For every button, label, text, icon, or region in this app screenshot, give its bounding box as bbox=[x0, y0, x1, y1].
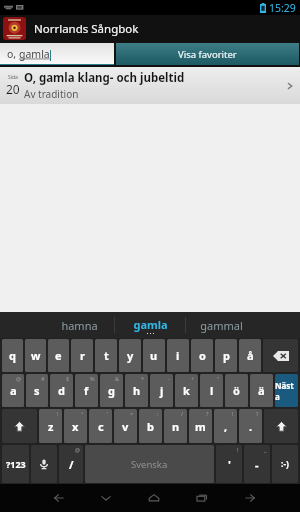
button[interactable]: Norrlands Sångbok bbox=[0, 15, 300, 42]
staticText: o bbox=[199, 348, 206, 363]
button[interactable]: Back bbox=[35, 484, 82, 512]
staticText: Norrlands Sångbok bbox=[34, 21, 139, 37]
button[interactable]: Shift bbox=[264, 409, 298, 443]
button[interactable]: q bbox=[2, 339, 23, 372]
button[interactable]: % bbox=[75, 374, 98, 407]
staticText: u bbox=[150, 348, 158, 363]
button[interactable]: Voice input bbox=[31, 445, 57, 483]
staticText: . bbox=[249, 419, 253, 434]
button[interactable]: " bbox=[200, 374, 223, 407]
staticText: d bbox=[58, 383, 65, 398]
staticText: e bbox=[55, 348, 62, 363]
staticText: Svenska bbox=[131, 458, 168, 471]
staticText: q bbox=[9, 348, 16, 363]
button[interactable]: # bbox=[26, 374, 48, 407]
button[interactable]: Home bbox=[130, 484, 178, 512]
button[interactable]: - bbox=[150, 374, 173, 407]
staticText: / bbox=[181, 410, 184, 417]
button[interactable]: @ bbox=[2, 374, 24, 407]
staticText: gamla bbox=[133, 317, 168, 332]
staticText: ?123 bbox=[6, 458, 26, 470]
button[interactable]: ? bbox=[189, 409, 212, 443]
staticText: ° bbox=[81, 410, 84, 417]
staticText: Nästa bbox=[275, 380, 298, 402]
staticText: _ bbox=[264, 446, 267, 453]
button[interactable]: y bbox=[119, 339, 141, 372]
button[interactable]: Backspace bbox=[263, 339, 298, 372]
button[interactable]: Visa favoriter bbox=[116, 43, 299, 65]
button[interactable]: Forward bbox=[226, 484, 274, 512]
staticText: gammal bbox=[200, 318, 243, 333]
button[interactable]: $ bbox=[50, 374, 73, 407]
button[interactable]: e bbox=[48, 339, 69, 372]
button[interactable]: ? bbox=[239, 409, 262, 443]
staticText: h bbox=[133, 383, 141, 398]
button[interactable]: @ bbox=[59, 445, 83, 483]
button[interactable]: Recent apps bbox=[178, 484, 226, 512]
button[interactable]: Shift bbox=[2, 409, 37, 443]
button[interactable]: = bbox=[114, 409, 137, 443]
button[interactable]: ! bbox=[214, 409, 237, 443]
button[interactable]: p bbox=[215, 339, 237, 372]
button[interactable]: u bbox=[143, 339, 165, 372]
button[interactable]: Svenska bbox=[85, 445, 214, 483]
button[interactable]: Sida bbox=[0, 67, 300, 104]
staticText: " bbox=[217, 375, 220, 382]
staticText: & bbox=[115, 375, 120, 382]
button[interactable]: + bbox=[175, 374, 198, 407]
button[interactable]: ?123 bbox=[2, 445, 29, 483]
button[interactable]: gamla bbox=[115, 312, 185, 338]
staticText: c bbox=[98, 419, 104, 434]
button[interactable]: r bbox=[71, 339, 93, 372]
staticText: n bbox=[172, 419, 180, 434]
staticText: % bbox=[90, 375, 95, 382]
staticText: Visa favoriter bbox=[178, 48, 237, 61]
staticText: ! bbox=[232, 410, 234, 417]
button[interactable]: ' bbox=[89, 409, 112, 443]
button[interactable]: Hide keyboard bbox=[82, 484, 130, 512]
staticText: l bbox=[210, 383, 214, 398]
staticText: ' bbox=[107, 410, 109, 417]
button[interactable]: Nästa bbox=[275, 374, 298, 407]
button[interactable]: o bbox=[191, 339, 213, 372]
button[interactable]: ! bbox=[39, 409, 62, 443]
button[interactable]: hamna bbox=[44, 312, 114, 338]
staticText: j bbox=[160, 383, 164, 398]
button[interactable]: * bbox=[125, 374, 148, 407]
button[interactable]: t bbox=[95, 339, 117, 372]
staticText: 15:29 bbox=[269, 1, 296, 15]
staticText: = bbox=[130, 410, 134, 417]
button[interactable]: ö bbox=[225, 374, 248, 407]
button[interactable]: w bbox=[25, 339, 46, 372]
button[interactable]: & bbox=[100, 374, 123, 407]
staticText: x bbox=[72, 419, 79, 434]
button[interactable]: / bbox=[164, 409, 187, 443]
staticText: a bbox=[10, 383, 17, 398]
staticText: ä bbox=[258, 383, 265, 398]
staticText: m bbox=[195, 419, 206, 434]
staticText: g bbox=[108, 383, 115, 398]
button[interactable]: ! bbox=[216, 445, 242, 483]
staticText: O, gamla klang- och jubeltid bbox=[24, 70, 185, 86]
staticText: k bbox=[183, 383, 190, 398]
staticText: :-) bbox=[281, 458, 289, 470]
staticText: o, bbox=[7, 47, 19, 61]
button[interactable]: ° bbox=[64, 409, 87, 443]
button[interactable]: ä bbox=[250, 374, 273, 407]
staticText: - bbox=[168, 375, 170, 382]
staticText: ? bbox=[206, 410, 209, 417]
button[interactable]: å bbox=[239, 339, 261, 372]
button[interactable]: o, bbox=[0, 43, 114, 65]
staticText: v bbox=[122, 419, 129, 434]
staticText: $ bbox=[66, 375, 70, 382]
button[interactable]: :-) bbox=[272, 445, 298, 483]
staticText: @ bbox=[16, 375, 21, 382]
button[interactable]: : bbox=[139, 409, 162, 443]
button[interactable]: i bbox=[167, 339, 189, 372]
button[interactable]: gammal bbox=[186, 312, 256, 338]
staticText: - bbox=[255, 457, 259, 472]
staticText: Av tradition bbox=[24, 87, 79, 101]
staticText: p bbox=[223, 348, 230, 363]
staticText: + bbox=[191, 375, 195, 382]
button[interactable]: _ bbox=[244, 445, 270, 483]
